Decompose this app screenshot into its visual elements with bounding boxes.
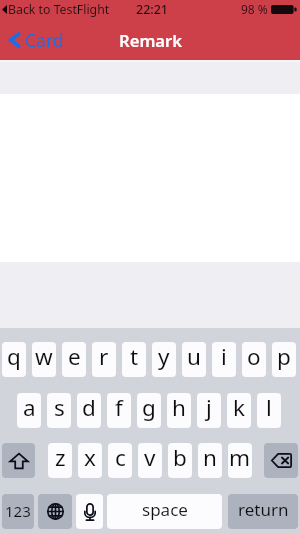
- staticText: space: [142, 498, 188, 521]
- button[interactable]: j: [197, 393, 221, 428]
- button[interactable]: Change keyboard: [38, 494, 72, 529]
- button[interactable]: c: [108, 443, 132, 478]
- staticText: i: [221, 342, 227, 372]
- staticText: z: [55, 443, 66, 473]
- staticText: Card: [25, 28, 64, 52]
- staticText: 123: [5, 501, 31, 521]
- staticText: m: [229, 443, 251, 473]
- button[interactable]: Shift: [2, 443, 35, 478]
- staticText: e: [68, 342, 81, 372]
- button[interactable]: u: [182, 342, 206, 377]
- staticText: Remark: [119, 29, 182, 52]
- staticText: h: [172, 393, 186, 423]
- button[interactable]: Back to TestFlight: [2, 1, 110, 18]
- staticText: p: [277, 342, 291, 372]
- button[interactable]: d: [77, 393, 101, 428]
- staticText: return: [238, 498, 289, 521]
- staticText: b: [173, 443, 187, 473]
- button[interactable]: m: [228, 443, 252, 478]
- button[interactable]: 123: [2, 494, 34, 529]
- button[interactable]: l: [257, 393, 281, 428]
- staticText: r: [99, 342, 109, 372]
- staticText: t: [130, 342, 139, 372]
- button[interactable]: a: [17, 393, 41, 428]
- staticText: y: [158, 342, 170, 372]
- staticText: f: [115, 393, 123, 423]
- staticText: w: [35, 342, 53, 372]
- button[interactable]: Dictation: [76, 494, 103, 529]
- button[interactable]: b: [168, 443, 192, 478]
- button[interactable]: v: [138, 443, 162, 478]
- button[interactable]: f: [107, 393, 131, 428]
- button[interactable]: o: [242, 342, 266, 377]
- staticText: c: [115, 443, 126, 473]
- staticText: v: [144, 443, 156, 473]
- staticText: q: [7, 342, 21, 372]
- button[interactable]: s: [47, 393, 71, 428]
- staticText: 98 %: [241, 1, 268, 17]
- staticText: 22:21: [136, 1, 169, 18]
- button[interactable]: Backspace: [264, 443, 298, 478]
- button[interactable]: w: [32, 342, 56, 377]
- button[interactable]: q: [2, 342, 26, 377]
- staticText: k: [233, 393, 246, 423]
- button[interactable]: i: [212, 342, 236, 377]
- staticText: u: [187, 342, 201, 372]
- button[interactable]: k: [227, 393, 251, 428]
- button[interactable]: e: [62, 342, 86, 377]
- button[interactable]: x: [78, 443, 102, 478]
- button[interactable]: z: [48, 443, 72, 478]
- staticText: Back to TestFlight: [8, 1, 110, 18]
- staticText: a: [23, 393, 36, 423]
- staticText: g: [142, 393, 156, 423]
- button[interactable]: t: [122, 342, 146, 377]
- button[interactable]: space: [107, 494, 222, 529]
- staticText: d: [82, 393, 96, 423]
- button[interactable]: h: [167, 393, 191, 428]
- staticText: o: [247, 342, 261, 372]
- staticText: j: [206, 393, 212, 423]
- button[interactable]: r: [92, 342, 116, 377]
- other: Back to TestFlight: [2, 5, 7, 14]
- staticText: n: [203, 443, 217, 473]
- button[interactable]: y: [152, 342, 176, 377]
- staticText: s: [54, 393, 65, 423]
- button[interactable]: p: [272, 342, 296, 377]
- button[interactable]: g: [137, 393, 161, 428]
- button[interactable]: return: [228, 494, 298, 529]
- button[interactable]: n: [198, 443, 222, 478]
- button[interactable]: Card: [0, 20, 72, 60]
- staticText: l: [266, 393, 272, 423]
- staticText: x: [84, 443, 96, 473]
